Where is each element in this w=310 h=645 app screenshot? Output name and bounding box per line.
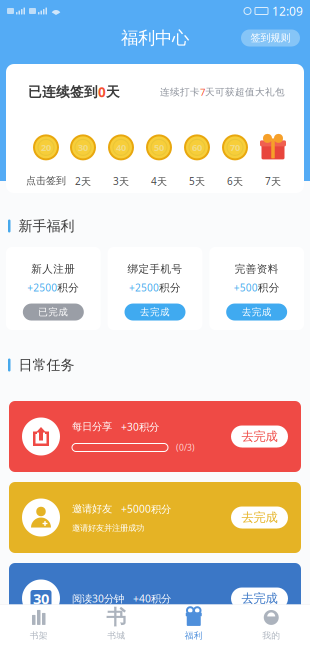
staticText: 书架 xyxy=(30,630,48,641)
staticText: +500 xyxy=(234,281,258,294)
staticText: 点击签到 xyxy=(26,174,66,187)
staticText: 邀请好友 xyxy=(72,502,112,515)
button[interactable]: 去完成 xyxy=(226,303,287,320)
staticText: 积分 xyxy=(57,281,79,294)
button[interactable]: 60 xyxy=(178,134,216,188)
staticText: +40积分 xyxy=(133,591,171,605)
staticText: 签到规则 xyxy=(250,32,290,44)
staticText: 7 xyxy=(200,85,205,99)
button[interactable]: 去完成 xyxy=(124,303,185,320)
staticText: 积分 xyxy=(159,281,181,294)
staticText: 7天 xyxy=(265,174,281,188)
staticText: 70 xyxy=(230,141,240,154)
staticText: 绑定手机号 xyxy=(127,262,182,276)
staticText: 福利中心 xyxy=(121,27,189,49)
staticText: 12:09 xyxy=(272,3,303,19)
staticText: 福利 xyxy=(185,630,203,641)
staticText: 去完成 xyxy=(241,510,277,525)
staticText: (0/3) xyxy=(176,442,195,453)
staticText: 完善资料 xyxy=(235,262,279,276)
button[interactable]: 7天 xyxy=(254,134,292,188)
staticText: 已完成 xyxy=(38,306,68,318)
staticText: 我的 xyxy=(262,630,280,641)
staticText: 20 xyxy=(41,141,51,154)
staticText: 书城 xyxy=(107,630,125,641)
staticText: +2500 xyxy=(27,281,57,294)
staticText: 已连续签到 xyxy=(28,83,98,100)
button[interactable]: 福利 xyxy=(155,605,232,645)
button[interactable]: 50 xyxy=(140,134,178,188)
staticText: 0 xyxy=(98,83,106,101)
button[interactable]: 20 xyxy=(26,134,64,187)
staticText: 新手福利 xyxy=(18,217,74,235)
staticText: +30积分 xyxy=(121,420,159,434)
button[interactable]: 书 xyxy=(77,605,155,645)
staticText: 30 xyxy=(78,141,88,154)
button[interactable]: 已完成 xyxy=(23,303,84,320)
staticText: 邀请好友并注册成功 xyxy=(72,523,144,533)
button[interactable]: 去完成 xyxy=(231,506,288,528)
button[interactable]: 我的 xyxy=(232,605,310,645)
button[interactable]: 书架 xyxy=(0,605,77,645)
staticText: 阅读30分钟 xyxy=(72,591,124,605)
staticText: 6天 xyxy=(227,174,243,188)
staticText: 积分 xyxy=(258,281,280,294)
staticText: +5000积分 xyxy=(121,502,171,516)
staticText: 书 xyxy=(106,605,126,630)
staticText: 每日分享 xyxy=(72,420,112,433)
button[interactable]: 签到规则 xyxy=(241,29,300,46)
staticText: 连续打卡 xyxy=(160,86,200,98)
staticText: +2500 xyxy=(129,281,159,294)
staticText: 天可获超值大礼包 xyxy=(205,86,285,98)
staticText: 50 xyxy=(154,141,164,154)
button[interactable]: 30 xyxy=(64,134,102,188)
staticText: 2天 xyxy=(75,174,91,188)
staticText: 日常任务 xyxy=(18,356,74,374)
button[interactable]: 40 xyxy=(102,134,140,188)
staticText: 60 xyxy=(192,141,202,154)
staticText: 30 xyxy=(33,588,49,608)
staticText: 去完成 xyxy=(241,429,277,444)
staticText: 40 xyxy=(116,141,126,154)
button[interactable]: 去完成 xyxy=(231,587,288,609)
button[interactable]: 70 xyxy=(216,134,254,188)
staticText: 去完成 xyxy=(241,591,277,606)
staticText: 去完成 xyxy=(140,306,170,318)
staticText: 天 xyxy=(106,83,120,100)
staticText: 新人注册 xyxy=(31,262,75,276)
staticText: 3天 xyxy=(113,174,129,188)
staticText: 去完成 xyxy=(242,306,272,318)
staticText: 5天 xyxy=(189,174,205,188)
button[interactable]: 去完成 xyxy=(231,425,288,447)
staticText: 4天 xyxy=(151,174,167,188)
